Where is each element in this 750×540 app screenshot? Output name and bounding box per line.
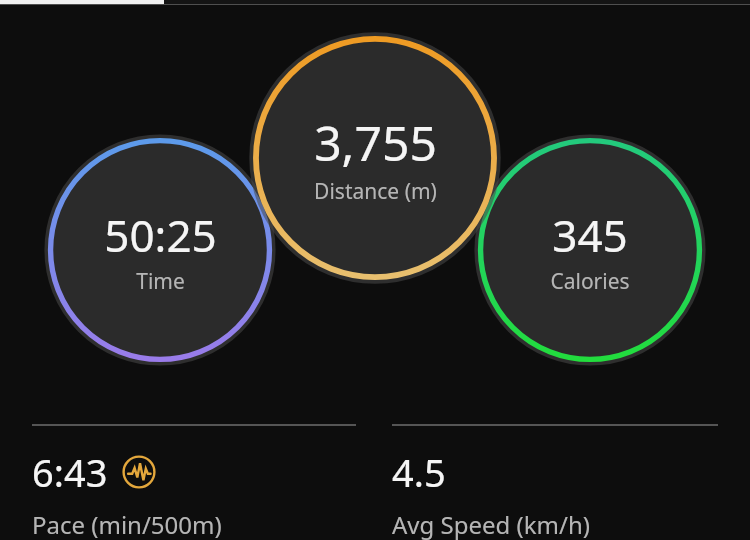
staticText: Distance (m) xyxy=(314,177,437,206)
button[interactable]: Time 50:25 xyxy=(46,136,274,364)
staticText: 345 xyxy=(552,205,628,265)
staticText: 3,755 xyxy=(314,110,437,175)
button[interactable]: 6:43 xyxy=(32,424,356,540)
button[interactable]: Distance 3755 meters xyxy=(251,34,499,282)
staticText: Time xyxy=(136,267,185,296)
staticText: Calories xyxy=(550,267,630,296)
button[interactable]: Calories 345 xyxy=(476,136,704,364)
staticText: 50:25 xyxy=(104,205,217,265)
staticText: 4.5 xyxy=(392,446,446,498)
staticText: Avg Speed (km/h) xyxy=(392,508,590,540)
staticText: Pace (min/500m) xyxy=(32,508,222,540)
other: Heart rate xyxy=(122,455,156,489)
staticText: 6:43 xyxy=(32,446,108,498)
button[interactable]: 4.5 xyxy=(392,424,718,540)
